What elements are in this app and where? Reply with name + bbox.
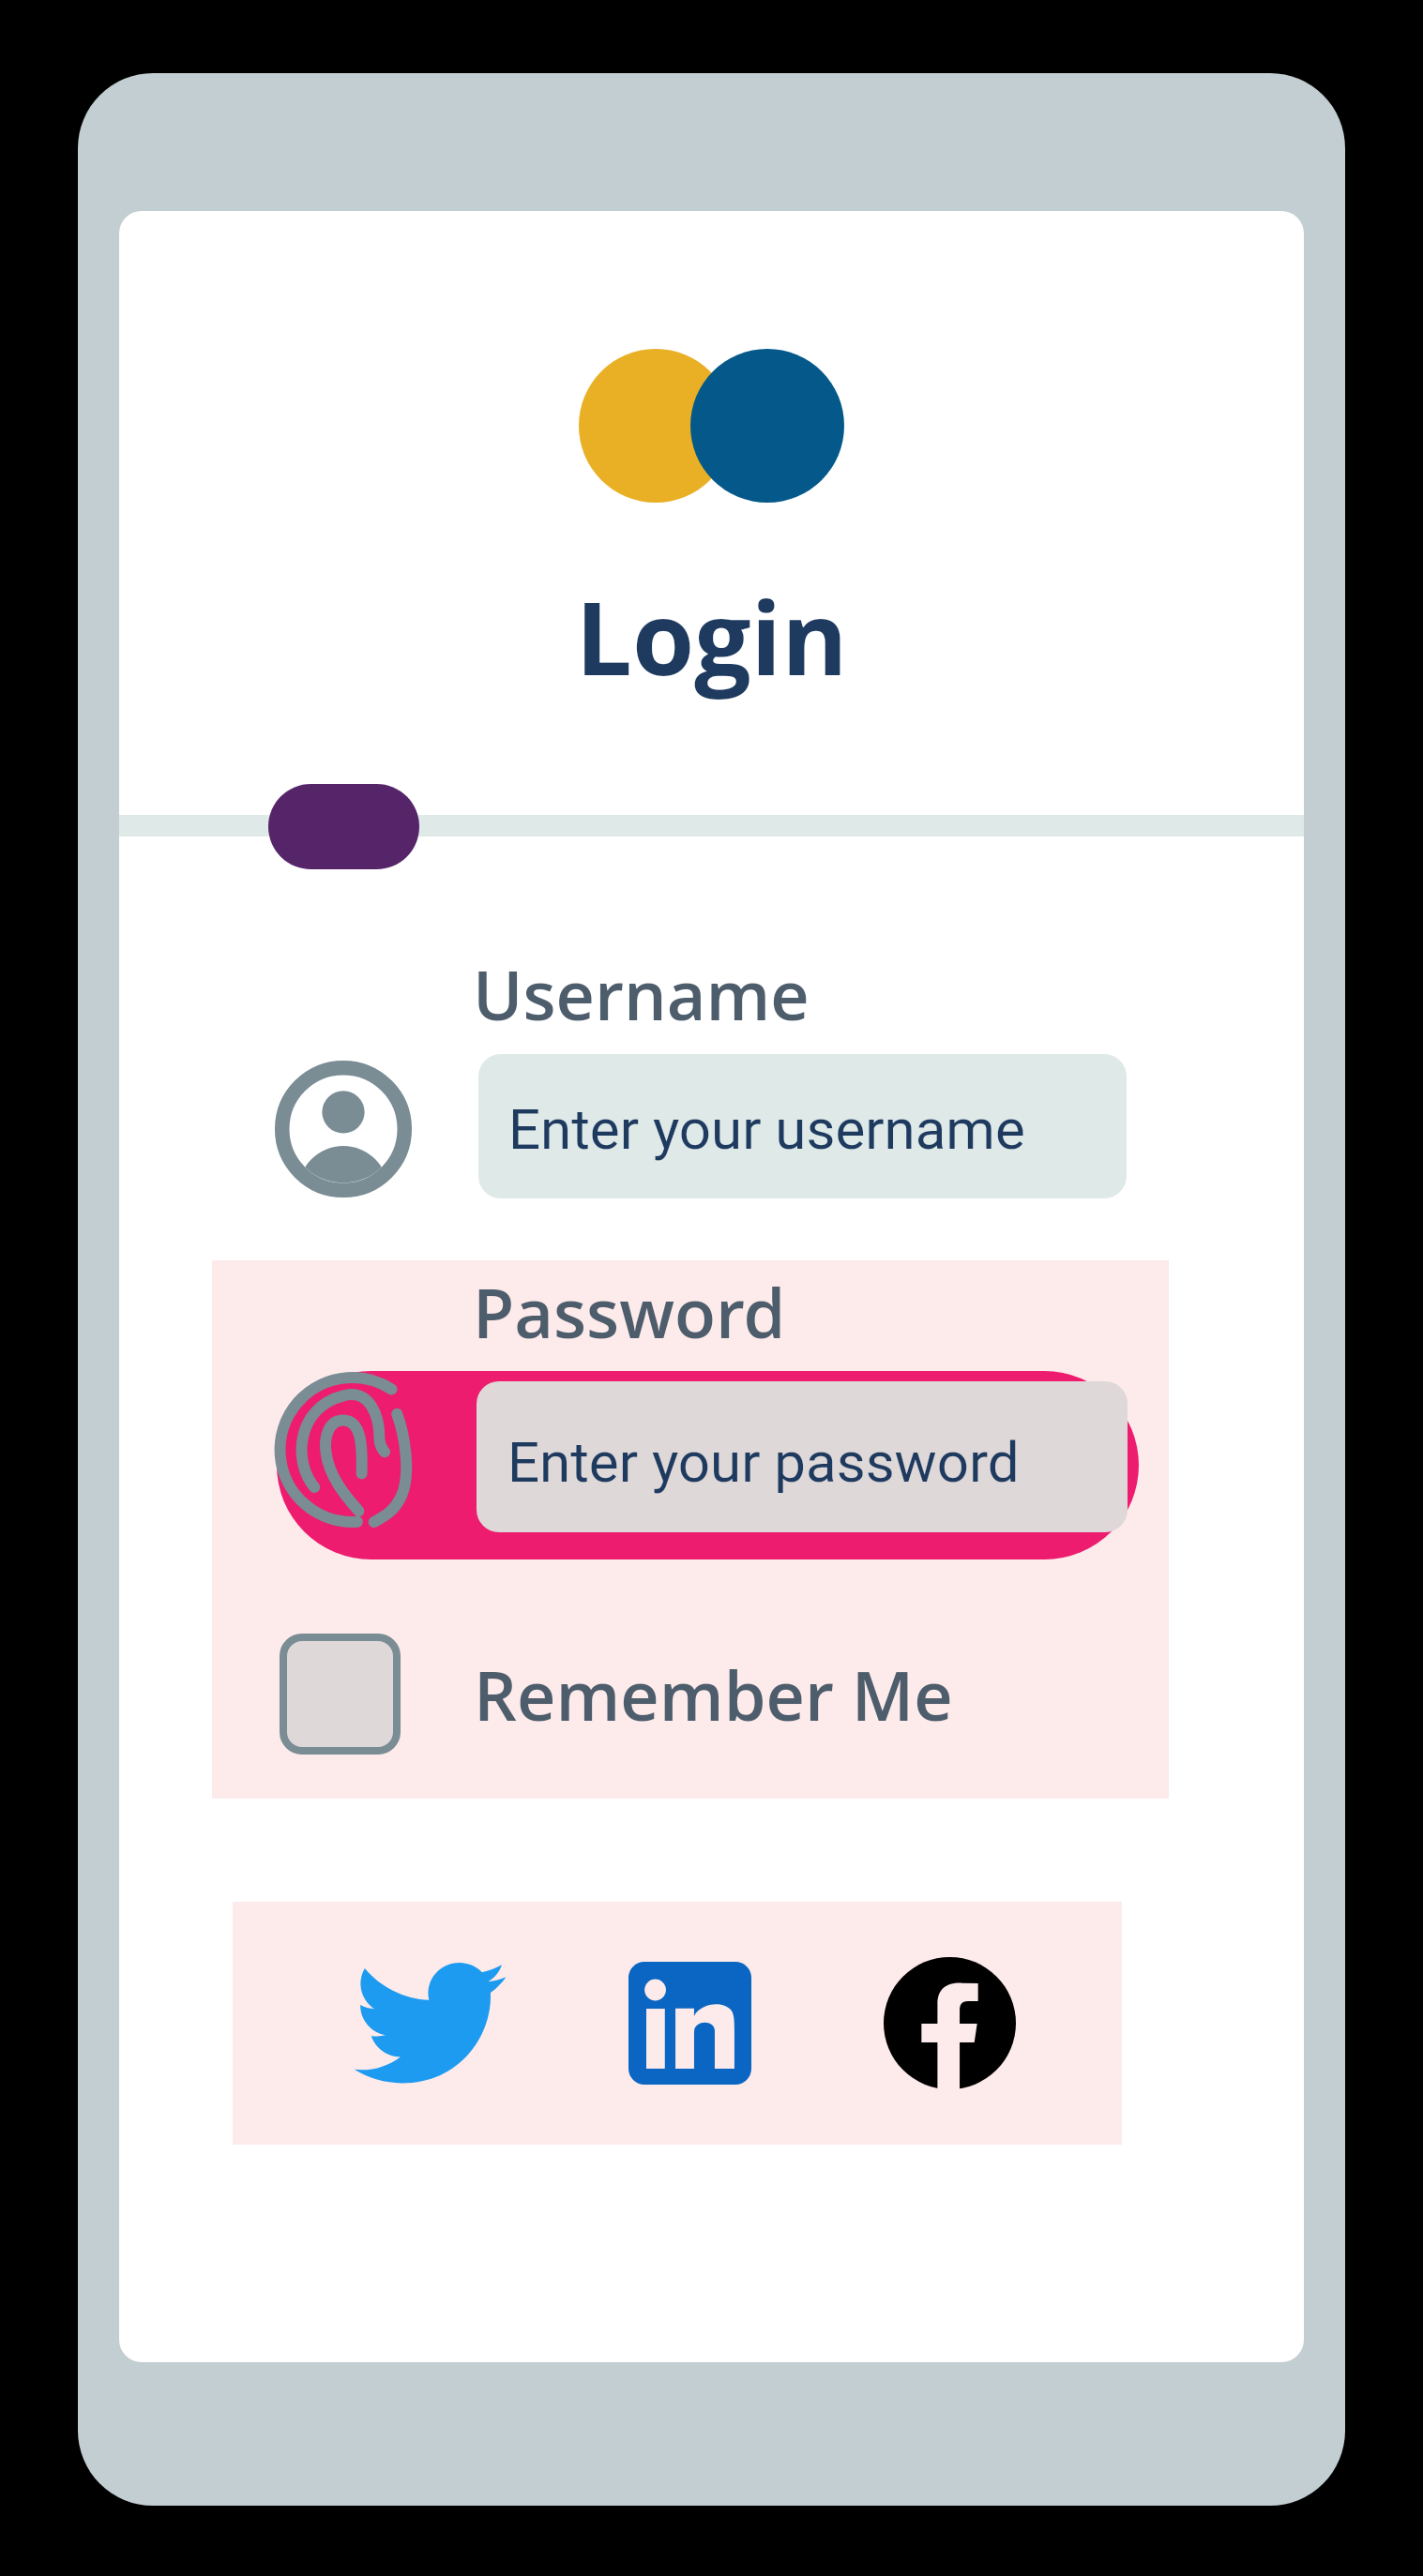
button[interactable]: Account: [274, 1060, 413, 1198]
staticText: Remember Me: [474, 1649, 953, 1740]
button[interactable]: Enter your password: [477, 1381, 1128, 1532]
button[interactable]: Fingerprint: [270, 1364, 420, 1552]
staticText: Login: [575, 568, 848, 705]
button[interactable]: Menu: [268, 784, 419, 869]
button[interactable]: [277, 1371, 1139, 1559]
button[interactable]: Twitter: [354, 1962, 507, 2085]
button[interactable]: Enter your username: [478, 1054, 1127, 1198]
staticText: Password: [473, 1266, 786, 1358]
staticText: Username: [473, 948, 810, 1040]
button[interactable]: LinkedIn: [628, 1962, 751, 2085]
staticText: Enter your username: [508, 1096, 1025, 1162]
button[interactable]: Facebook: [884, 1957, 1016, 2089]
button[interactable]: Remember Me: [280, 1634, 953, 1755]
staticText: Enter your password: [507, 1429, 1020, 1495]
